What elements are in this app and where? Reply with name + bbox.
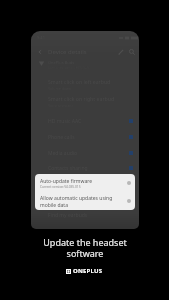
button[interactable]: Bluetooth codec	[31, 179, 139, 191]
button[interactable]: Media audio	[31, 147, 139, 159]
staticText: Bluetooth codec	[48, 182, 87, 189]
staticText: ONEPLUS	[73, 267, 103, 275]
button[interactable]: Auto-update firmware	[35, 174, 135, 192]
staticText: Current version:V4.035.015	[40, 185, 81, 189]
button[interactable]: Contacts sharing	[31, 162, 139, 174]
button[interactable]: Find my earbuds	[31, 209, 139, 221]
button[interactable]: Phone calls	[31, 131, 139, 143]
button[interactable]: Allow automatic updates using mobile dat…	[35, 192, 135, 210]
staticText: Auto-update firmware	[40, 178, 92, 185]
button[interactable]: Search	[125, 45, 138, 58]
staticText: Update the headset software	[43, 236, 127, 260]
staticText: Allow automatic updates using mobile dat…	[40, 195, 127, 208]
button[interactable]: HD music AAC	[31, 115, 139, 127]
